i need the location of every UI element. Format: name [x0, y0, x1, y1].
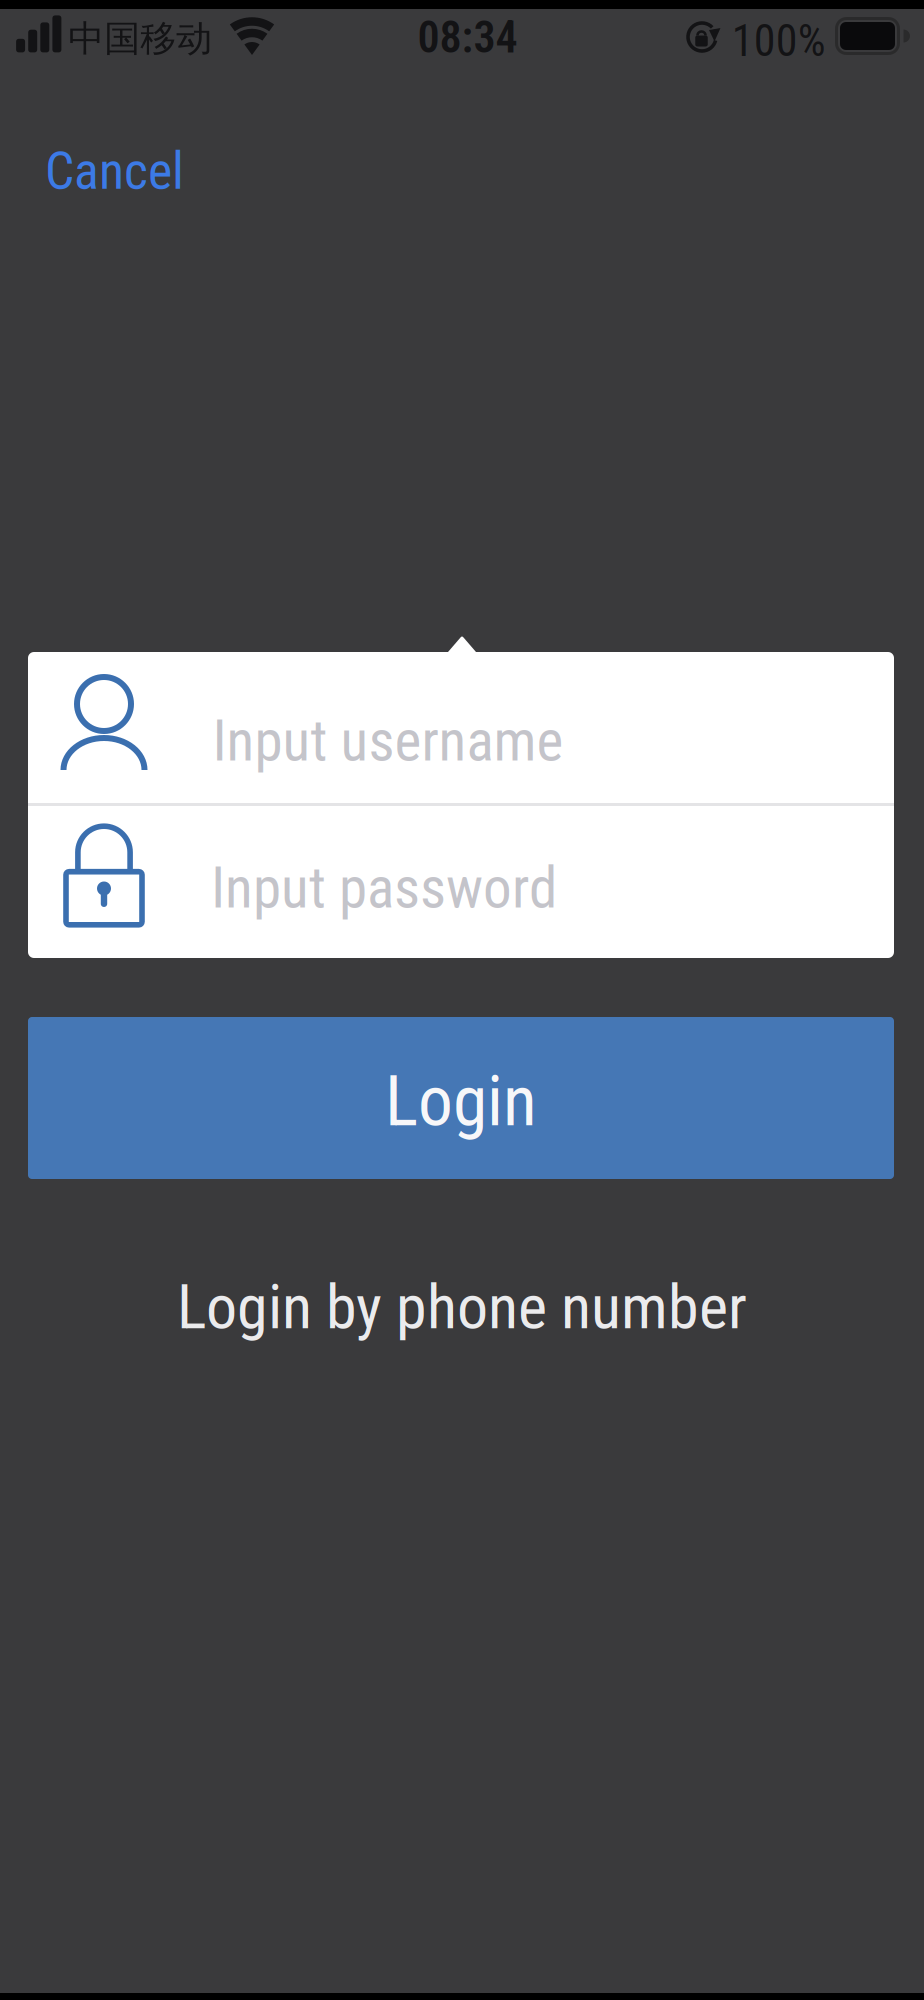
staticText: Input username	[212, 708, 563, 774]
button[interactable]: Input password	[28, 806, 894, 958]
button[interactable]: Login by phone number	[177, 1271, 747, 1343]
staticText: Cancel	[45, 141, 184, 201]
button[interactable]: Input username	[28, 652, 894, 803]
staticText: Input password	[211, 855, 557, 921]
button[interactable]: Cancel	[45, 141, 184, 201]
button[interactable]: Login	[28, 1017, 894, 1179]
staticText: 100%	[732, 15, 826, 67]
staticText: 中国移动	[68, 16, 212, 61]
staticText: 08:34	[417, 12, 517, 63]
staticText: Login	[385, 1061, 537, 1142]
staticText: Login by phone number	[177, 1271, 747, 1343]
